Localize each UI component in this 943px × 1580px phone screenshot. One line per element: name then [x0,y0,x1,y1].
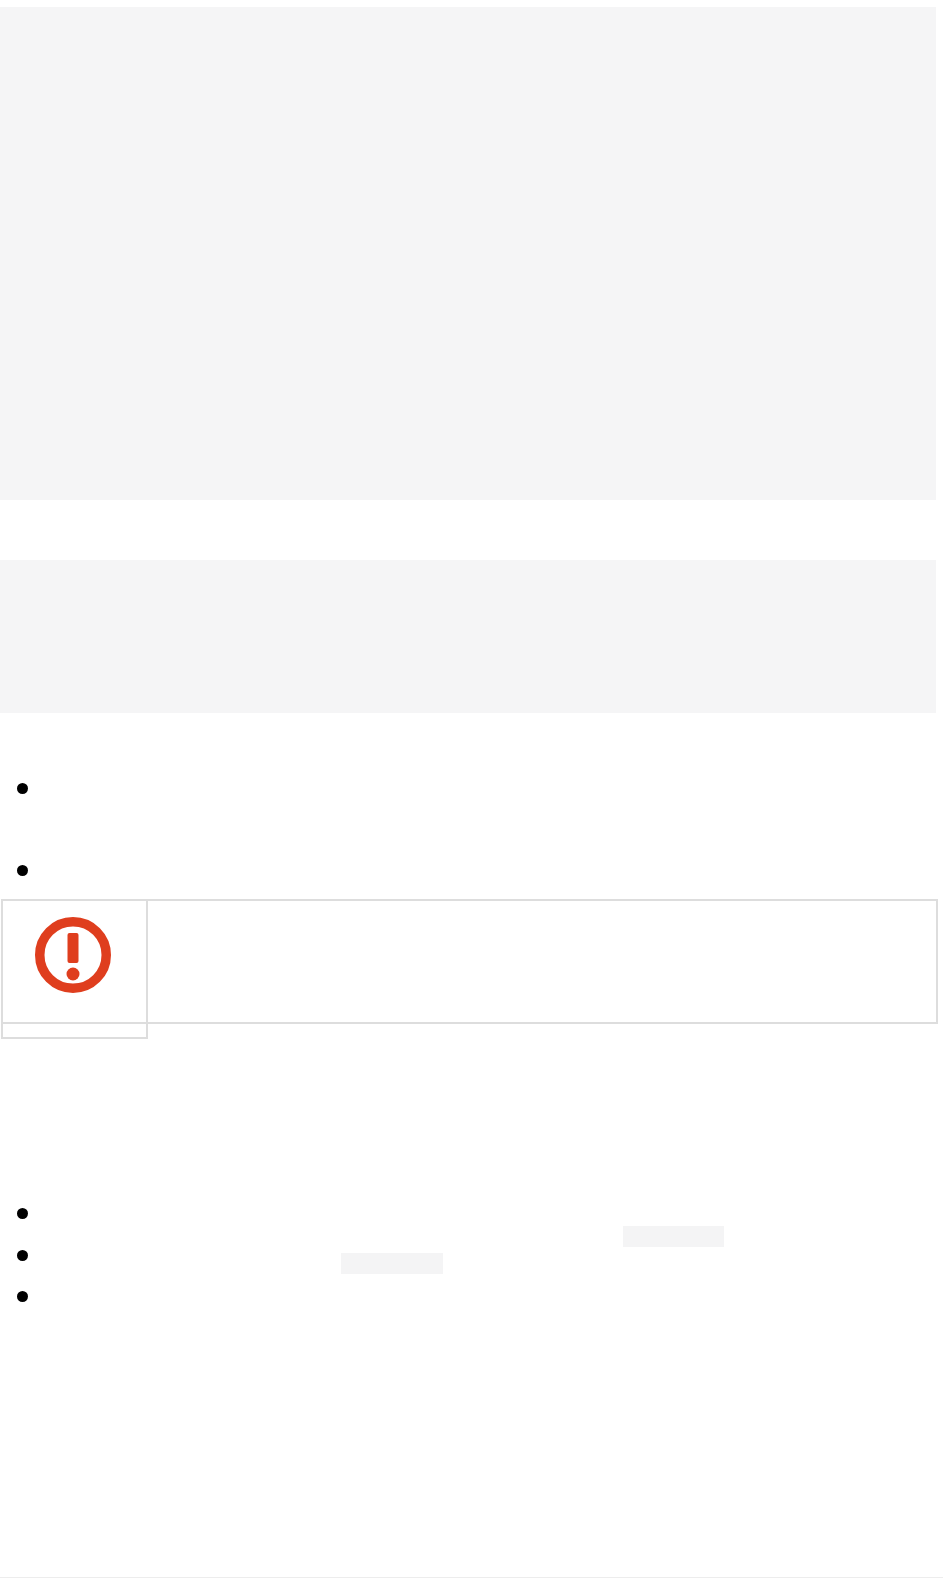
button[interactable]: Important warning [0,897,941,1040]
